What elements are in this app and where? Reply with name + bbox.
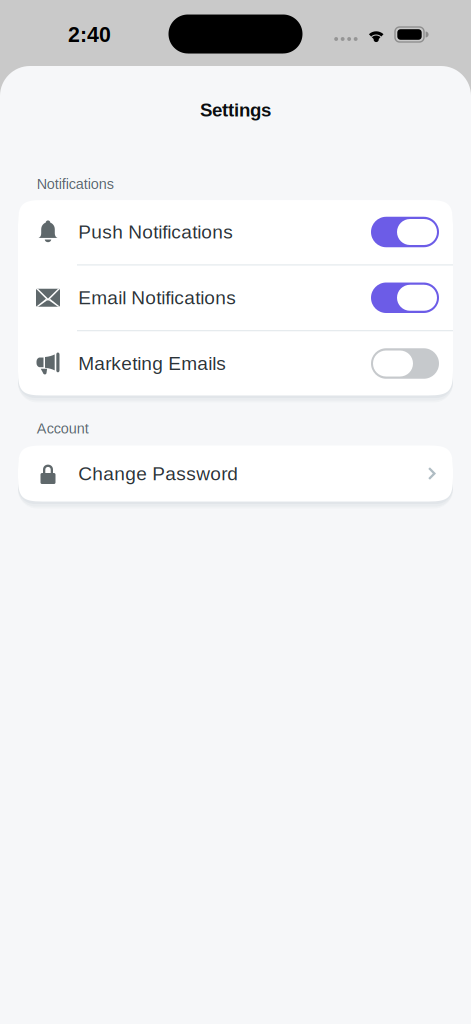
- staticText: Change Password: [78, 463, 238, 484]
- staticText: 2:40: [68, 23, 111, 46]
- staticText: Marketing Emails: [78, 353, 226, 374]
- button[interactable]: Email Notifications: [18, 265, 453, 330]
- staticText: Account: [37, 420, 89, 436]
- staticText: Notifications: [37, 176, 114, 192]
- staticText: Settings: [200, 100, 271, 120]
- button[interactable]: Push Notifications: [18, 200, 453, 264]
- button[interactable]: Change Password: [18, 445, 453, 501]
- button[interactable]: Marketing Emails: [18, 331, 453, 396]
- staticText: Email Notifications: [78, 287, 236, 308]
- staticText: Push Notifications: [78, 221, 233, 243]
